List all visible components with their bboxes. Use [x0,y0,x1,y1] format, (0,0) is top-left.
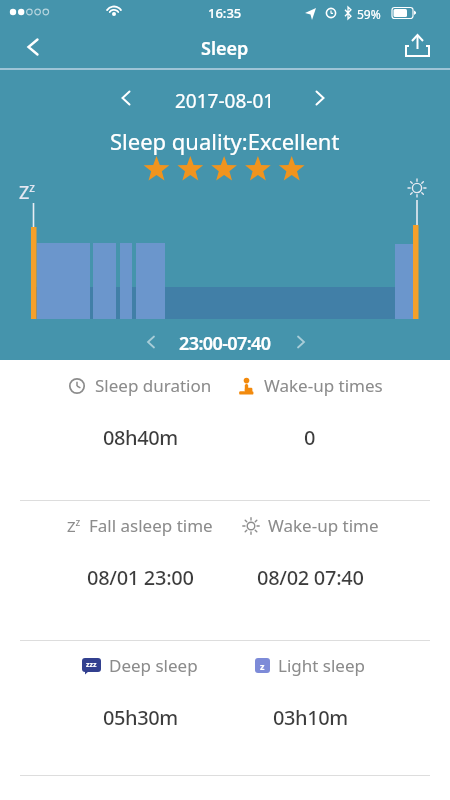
staticText: Sleep duration [95,374,212,397]
staticText: Deep sleep [109,654,198,677]
staticText: Wake-up times [264,374,383,397]
staticText: 16:35 [208,4,242,22]
staticText: Sleep quality:Excellent [110,126,340,156]
staticText: 08/01 23:00 [87,564,194,591]
staticText: z [260,660,265,672]
staticText: Wake-up time [268,514,379,537]
staticText: Zz [67,515,81,536]
button[interactable] [306,84,334,112]
staticText: 23:00-07:40 [179,331,271,356]
staticText: 03h10m [273,704,348,731]
staticText: Fall asleep time [89,514,213,537]
staticText: 08h40m [103,424,178,451]
button[interactable] [288,329,314,355]
button[interactable] [398,30,438,62]
staticText: 0 [304,424,316,451]
button[interactable] [138,329,164,355]
staticText: 05h30m [103,704,178,731]
staticText: 59% [357,6,381,22]
staticText: zzz [86,660,97,670]
button[interactable] [14,30,50,64]
staticText: Zz [19,179,35,204]
staticText: Sleep [201,36,249,61]
staticText: Light sleep [278,654,365,677]
staticText: 2017-08-01 [175,88,275,114]
button[interactable] [112,84,140,112]
staticText: 08/02 07:40 [257,564,364,591]
